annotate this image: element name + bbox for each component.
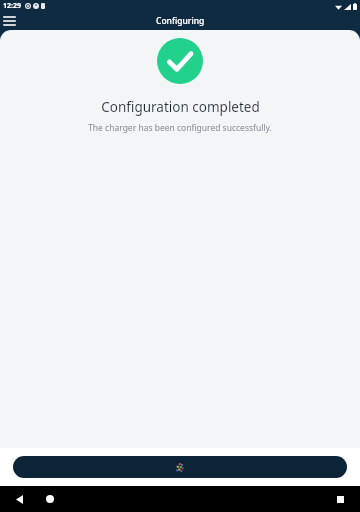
staticText: Configuring (156, 15, 205, 27)
staticText: The charger has been configured successf… (88, 122, 272, 134)
button[interactable]: Finish configuration (13, 456, 347, 478)
staticText: 12:29 (3, 1, 21, 11)
staticText: Configuration completed (101, 98, 260, 116)
button[interactable]: Home (41, 490, 59, 508)
button[interactable]: Back (10, 490, 28, 508)
button[interactable]: Open navigation menu (0, 12, 18, 30)
button[interactable]: Recent apps (331, 490, 349, 508)
